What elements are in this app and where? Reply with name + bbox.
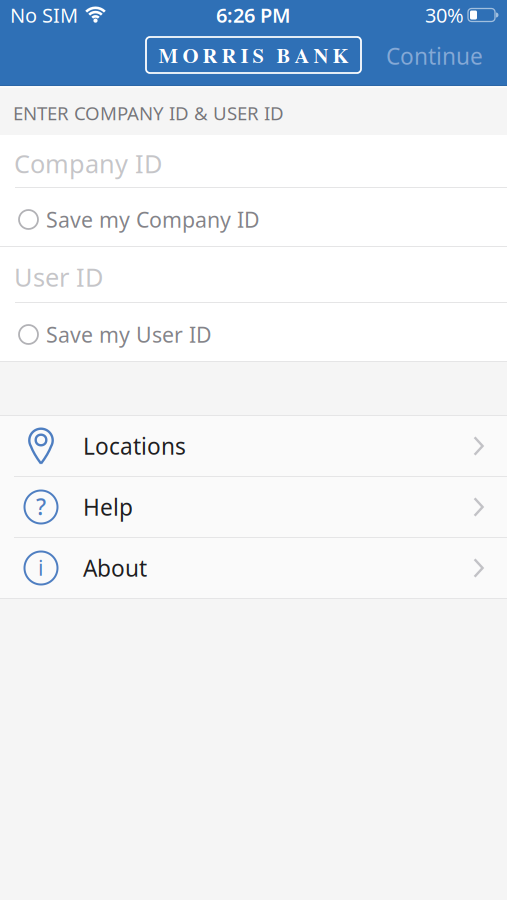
staticText: ? (36, 491, 46, 521)
button[interactable]: Company ID (0, 135, 507, 187)
staticText: 6:26 PM (216, 2, 291, 28)
staticText: ENTER COMPANY ID & USER ID (13, 101, 284, 125)
staticText: Save my User ID (46, 320, 212, 349)
staticText: About (83, 553, 147, 583)
staticText: Save my Company ID (46, 205, 260, 234)
button[interactable]: ? (0, 477, 507, 537)
staticText: Continue (386, 41, 483, 71)
staticText: User ID (14, 260, 103, 294)
staticText: Help (83, 492, 133, 522)
button[interactable]: User ID (0, 247, 507, 302)
button[interactable]: Continue (386, 41, 507, 74)
staticText: Locations (83, 431, 186, 461)
staticText: M O R R I S B A N K (158, 40, 348, 70)
button[interactable]: i (0, 538, 507, 598)
staticText: 30% (425, 2, 464, 28)
staticText: i (38, 553, 44, 582)
button[interactable]: Locations (0, 416, 507, 476)
staticText: No SIM (10, 2, 78, 28)
button[interactable]: Save my Company ID (0, 188, 507, 246)
button[interactable]: Save my User ID (0, 303, 507, 361)
staticText: Company ID (14, 147, 162, 180)
